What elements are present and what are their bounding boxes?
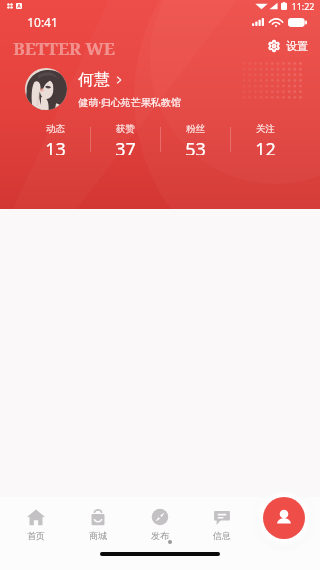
staticText: 11:22: [291, 0, 315, 12]
staticText: 获赞: [116, 123, 135, 135]
staticText: BETTER WE: [13, 37, 115, 55]
button[interactable]: 动态: [20, 123, 90, 155]
staticText: 信息: [213, 530, 231, 541]
button[interactable]: 关注: [231, 123, 300, 155]
button[interactable]: 获赞: [91, 123, 160, 155]
button[interactable]: 信息: [191, 502, 253, 546]
staticText: 37: [115, 137, 136, 155]
staticText: 10:41: [27, 14, 58, 30]
staticText: 12: [255, 137, 276, 155]
button[interactable]: 商城: [67, 502, 129, 546]
staticText: A: [17, 3, 21, 9]
staticText: 粉丝: [186, 123, 205, 135]
button[interactable]: 何慧: [25, 68, 304, 110]
button[interactable]: My profile: [263, 497, 305, 539]
staticText: 首页: [27, 530, 45, 541]
staticText: 发布: [151, 530, 169, 541]
staticText: 何慧: [78, 70, 110, 90]
staticText: 设置: [286, 39, 308, 53]
staticText: 商城: [89, 530, 107, 541]
button[interactable]: 发布: [129, 502, 191, 546]
staticText: 53: [185, 137, 206, 155]
button[interactable]: 设置: [264, 37, 312, 55]
button[interactable]: 首页: [5, 502, 67, 546]
staticText: 13: [45, 137, 66, 155]
staticText: 关注: [256, 123, 275, 135]
staticText: 健萌·归心苑芒果私教馆: [78, 95, 181, 109]
button[interactable]: 粉丝: [161, 123, 230, 155]
staticText: 动态: [46, 123, 65, 135]
